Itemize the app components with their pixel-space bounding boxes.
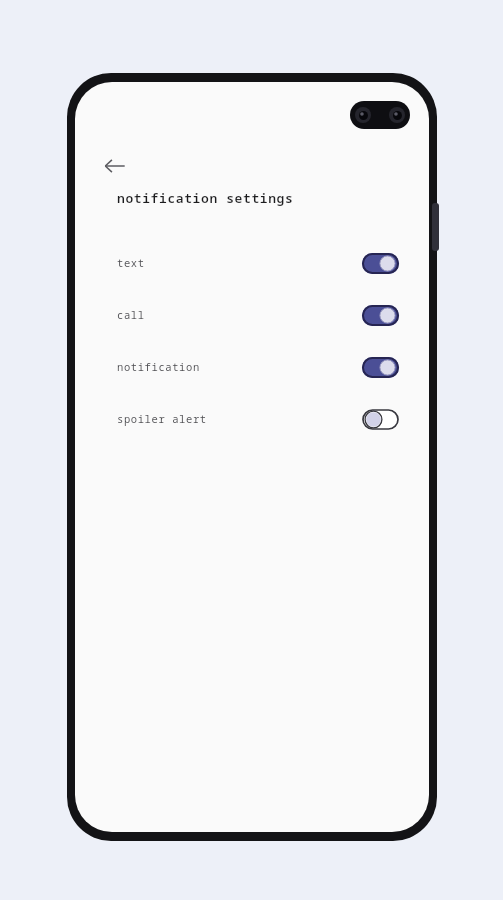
button[interactable]: call xyxy=(75,297,429,333)
staticText: text xyxy=(117,256,145,270)
button[interactable]: On xyxy=(362,305,399,326)
button[interactable]: notification xyxy=(75,349,429,385)
staticText: call xyxy=(117,308,145,322)
button[interactable]: On xyxy=(362,253,399,274)
staticText: spoiler alert xyxy=(117,412,207,426)
button[interactable]: text xyxy=(75,245,429,281)
staticText: notification xyxy=(117,360,200,374)
staticText: notification settings xyxy=(117,189,294,207)
button[interactable]: On xyxy=(362,357,399,378)
button[interactable]: Back xyxy=(95,146,135,186)
button[interactable]: spoiler alert xyxy=(75,401,429,437)
button[interactable]: Off xyxy=(362,409,399,430)
